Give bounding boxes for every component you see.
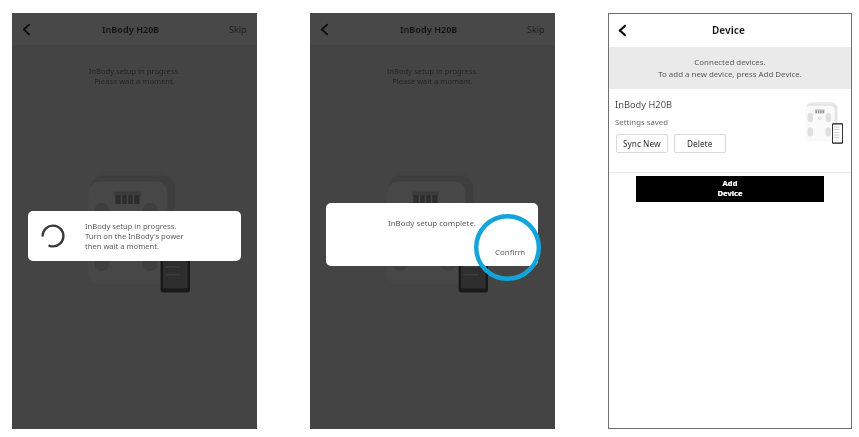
- button[interactable]: Sync New: [616, 134, 668, 153]
- staticText: InBody setup in progress. Please wait a …: [12, 66, 257, 86]
- staticText: Add Device: [636, 178, 824, 198]
- button[interactable]: Back: [613, 21, 631, 39]
- staticText: InBody setup in progress. Please wait a …: [310, 66, 555, 86]
- button[interactable]: Skip: [525, 19, 547, 39]
- staticText: InBody H20B: [102, 23, 160, 35]
- staticText: Confirm: [495, 247, 526, 258]
- staticText: Delete: [687, 138, 713, 149]
- button[interactable]: Add Device: [636, 176, 824, 202]
- button[interactable]: Back: [17, 20, 35, 38]
- staticText: Device: [712, 23, 745, 37]
- staticText: Skip: [527, 23, 545, 35]
- button[interactable]: Confirm: [495, 247, 526, 258]
- staticText: Skip: [229, 23, 247, 35]
- button[interactable]: Skip: [227, 19, 249, 39]
- staticText: Settings saved: [615, 117, 668, 128]
- button[interactable]: Back: [315, 20, 333, 38]
- staticText: InBody H20B: [400, 23, 458, 35]
- staticText: InBody H20B: [615, 98, 673, 111]
- staticText: Sync New: [623, 138, 661, 149]
- staticText: InBody setup in progress. Turn on the In…: [85, 221, 184, 251]
- button[interactable]: Delete: [674, 134, 726, 153]
- staticText: InBody setup complete.: [326, 218, 538, 229]
- staticText: Connected devices. To add a new device, …: [608, 57, 852, 79]
